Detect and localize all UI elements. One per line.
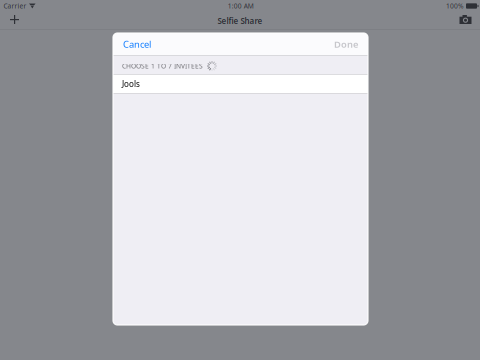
staticText: CHOOSE 1 TO 7 INVITEES <box>122 62 203 70</box>
staticText: 100% <box>446 2 464 10</box>
staticText: Done <box>334 38 358 50</box>
staticText: Selfie Share <box>217 16 262 26</box>
staticText: 1:00 AM <box>228 2 254 10</box>
button[interactable]: Add <box>1 12 28 30</box>
button[interactable]: Done <box>324 33 368 55</box>
button[interactable]: Camera <box>452 12 479 30</box>
button[interactable]: Cancel <box>113 33 161 55</box>
staticText: Cancel <box>123 38 151 50</box>
staticText: Carrier <box>3 2 26 10</box>
staticText: Jools <box>122 79 140 89</box>
button[interactable]: Jools <box>113 74 368 93</box>
